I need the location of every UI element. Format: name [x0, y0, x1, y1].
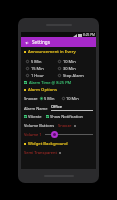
button[interactable]: Announcement in Every	[24, 49, 93, 55]
button[interactable]: 1 Hour	[26, 73, 58, 78]
button[interactable]: Stop Alarm	[58, 73, 93, 78]
button[interactable]: Widget Background	[24, 141, 93, 147]
staticText: Stop Alarm	[63, 73, 84, 78]
staticText: Snooze	[58, 123, 72, 128]
button[interactable]: Alarm Time @ 8:25 PM	[24, 80, 93, 85]
staticText: Semi Transparent	[24, 150, 57, 155]
staticText: 8:25 PM	[83, 33, 95, 37]
staticText: Volume Buttons	[24, 123, 55, 128]
staticText: 1 Hour	[31, 73, 44, 78]
staticText: 10 Min	[66, 96, 79, 101]
staticText: Office	[51, 104, 63, 109]
staticText: Alarm Options	[28, 87, 57, 93]
button[interactable]: Show Notification	[46, 114, 84, 119]
button[interactable]	[45, 130, 93, 138]
button[interactable]: 5 Min	[26, 59, 58, 64]
button[interactable]: Alarm Name	[24, 104, 93, 111]
staticText: Snooze	[24, 96, 38, 101]
staticText: Vibrate	[28, 114, 42, 119]
staticText: Widget Background	[28, 141, 68, 147]
button[interactable]: 5 Min	[40, 96, 55, 101]
button[interactable]: 10 Min	[62, 96, 79, 101]
button[interactable]: Semi Transparent	[24, 150, 93, 155]
button[interactable]: Vibrate	[24, 114, 42, 119]
button[interactable]: Back	[21, 37, 96, 47]
staticText: Show Notification	[50, 114, 84, 119]
staticText: Settings	[32, 39, 50, 45]
staticText: 15 Min	[31, 66, 44, 71]
button[interactable]: 15 Min	[26, 66, 58, 71]
staticText: Alarm Name	[24, 106, 48, 111]
staticText: 5 Min	[44, 96, 55, 101]
staticText: Alarm Time @ 8:25 PM	[29, 80, 72, 85]
staticText: 10 Min	[63, 59, 76, 64]
staticText: 5 Min	[31, 59, 42, 64]
button[interactable]: Alarm Options	[24, 87, 93, 93]
staticText: Volume 1	[24, 132, 42, 137]
staticText: 30 Min	[63, 66, 76, 71]
button[interactable]: 30 Min	[58, 66, 93, 71]
button[interactable]: Volume Buttons	[24, 123, 93, 128]
button[interactable]: Back	[23, 39, 30, 46]
staticText: Announcement in Every	[28, 49, 76, 55]
button[interactable]: 10 Min	[58, 59, 93, 64]
